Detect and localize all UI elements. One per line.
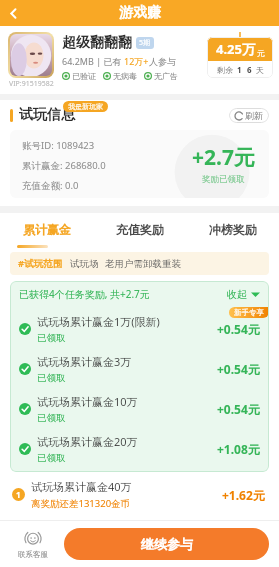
staticText: 我是新玩家 xyxy=(68,102,103,111)
staticText: 已领取 xyxy=(37,372,66,384)
button[interactable]: 冲榜奖励 xyxy=(186,213,279,245)
staticText: 已验证 xyxy=(72,71,96,81)
button[interactable]: 已获得4个任务奖励, 共+2.7元 xyxy=(10,281,269,307)
staticText: 已领取 xyxy=(37,332,66,344)
staticText: 试玩场累计赢金40万 xyxy=(31,479,132,494)
staticText: 超级翻翻翻 xyxy=(62,34,132,52)
staticText: 1 xyxy=(16,489,21,500)
staticText: VIP:91519582 xyxy=(9,79,54,89)
staticText: 1 xyxy=(237,64,242,75)
staticText: 试玩场累计赢金20万 xyxy=(37,434,138,449)
button[interactable]: 刷新 xyxy=(229,108,269,123)
button[interactable]: 试玩场累计赢金20万 xyxy=(10,427,269,467)
staticText: 人参与 xyxy=(149,56,176,67)
button[interactable]: 继续参与 xyxy=(64,528,269,560)
staticText: 天 xyxy=(256,65,264,75)
staticText: 试玩场累计赢金1万(限新) xyxy=(37,314,160,329)
button[interactable]: 充值奖励 xyxy=(93,213,186,245)
button[interactable]: 1 xyxy=(10,479,269,510)
staticText: 无广告 xyxy=(154,71,178,81)
staticText: 奖励已领取 xyxy=(202,174,245,185)
staticText: +0.54元 xyxy=(217,401,260,417)
button[interactable]: 联系客服 xyxy=(10,521,56,567)
button[interactable]: 试玩场累计赢金1万(限新) xyxy=(10,307,269,347)
button[interactable]: Back xyxy=(0,0,26,26)
staticText: 5期 xyxy=(139,38,151,48)
staticText: +1.62元 xyxy=(222,487,265,503)
staticText: 试玩场累计赢金3万 xyxy=(37,354,132,369)
staticText: 继续参与 xyxy=(141,536,193,552)
staticText: +0.54元 xyxy=(217,361,260,377)
staticText: 游戏赚 xyxy=(119,4,161,22)
staticText: 试玩信息 xyxy=(19,106,75,124)
staticText: 冲榜奖励 xyxy=(209,222,257,237)
staticText: +0.54元 xyxy=(217,321,260,337)
button[interactable]: 试玩场累计赢金10万 xyxy=(10,387,269,427)
staticText: 累计赢金: 268680.0 xyxy=(22,159,106,172)
staticText: 已领取 xyxy=(37,452,66,464)
staticText: 6 xyxy=(247,64,252,75)
button[interactable]: 累计赢金 xyxy=(0,213,93,245)
staticText: #试玩范围 xyxy=(18,257,63,270)
staticText: 累计赢金 xyxy=(23,222,71,237)
staticText: 4.25万 xyxy=(216,40,255,58)
staticText: 元 xyxy=(257,48,265,58)
staticText: +1.08元 xyxy=(217,441,260,457)
staticText: +2.7元 xyxy=(192,143,255,172)
staticText: 无病毒 xyxy=(113,71,137,81)
staticText: 剩余 xyxy=(217,65,233,75)
staticText: 试玩场累计赢金10万 xyxy=(37,394,138,409)
staticText: 试玩场 xyxy=(70,258,99,270)
staticText: 已获得4个任务奖励, 共+2.7元 xyxy=(19,287,150,301)
staticText: 新手专享 xyxy=(234,308,264,317)
staticText: 充值奖励 xyxy=(116,222,164,237)
staticText: 账号ID: 1089423 xyxy=(22,139,95,152)
staticText: 收起 xyxy=(227,288,247,301)
staticText: 老用户需卸载重装 xyxy=(105,258,181,270)
staticText: 64.2MB | 已有 xyxy=(62,55,124,67)
staticText: 离奖励还差131320金币 xyxy=(31,497,131,510)
staticText: 12万+ xyxy=(124,55,149,67)
staticText: 刷新 xyxy=(245,110,263,121)
staticText: 联系客服 xyxy=(18,550,48,559)
staticText: 充值金额: 0.0 xyxy=(22,179,79,192)
button[interactable]: 试玩场累计赢金3万 xyxy=(10,347,269,387)
staticText: 已领取 xyxy=(37,412,66,424)
